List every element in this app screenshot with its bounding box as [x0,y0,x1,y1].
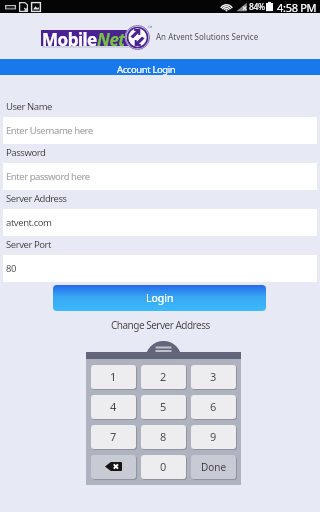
button[interactable]: 80 [3,255,317,282]
staticText: Account Login [117,63,176,76]
button[interactable]: Enter password here [3,163,317,190]
staticText: User Name [6,100,52,113]
staticText: atvent.com [6,216,52,229]
staticText: 2 [160,369,167,384]
staticText: 8 [160,429,167,444]
button[interactable]: Change Server Address [111,318,210,332]
staticText: 80 [6,262,16,275]
button[interactable]: Delete [91,454,136,479]
staticText: 4:58 PM [277,0,317,13]
staticText: Server Address [6,192,67,205]
button[interactable]: 2 [141,364,186,389]
staticText: ™ [148,24,153,32]
button[interactable]: Done [191,454,236,479]
button[interactable]: atvent.com [3,209,317,236]
staticText: 0 [160,459,167,474]
staticText: 5 [160,399,167,414]
staticText: 84% [249,1,265,13]
button[interactable]: 4 [91,394,136,419]
staticText: Enter Username here [6,124,93,137]
staticText: 4 [110,399,117,414]
staticText: Login [146,291,174,305]
staticText: Password [6,146,46,159]
staticText: Done [201,460,227,474]
button[interactable]: 8 [141,424,186,449]
staticText: An Atvent Solutions Service [156,31,259,42]
button[interactable]: 3 [191,364,236,389]
button[interactable]: 6 [191,394,236,419]
staticText: Server Port [6,238,51,251]
button[interactable]: 0 [141,454,186,479]
button[interactable]: Login [53,285,266,311]
button[interactable]: 7 [91,424,136,449]
staticText: 7 [110,429,117,444]
button[interactable]: 5 [141,394,186,419]
staticText: Mobile [42,28,97,48]
button[interactable]: 9 [191,424,236,449]
staticText: Enter password here [6,170,90,183]
button[interactable]: Account Login [0,59,320,75]
staticText: 9 [210,429,217,444]
staticText: 6 [210,399,217,414]
staticText: 1 [110,369,117,384]
button[interactable]: Enter Username here [3,117,317,144]
staticText: Net [97,28,125,48]
button[interactable]: 1 [91,364,136,389]
staticText: 3 [210,369,217,384]
